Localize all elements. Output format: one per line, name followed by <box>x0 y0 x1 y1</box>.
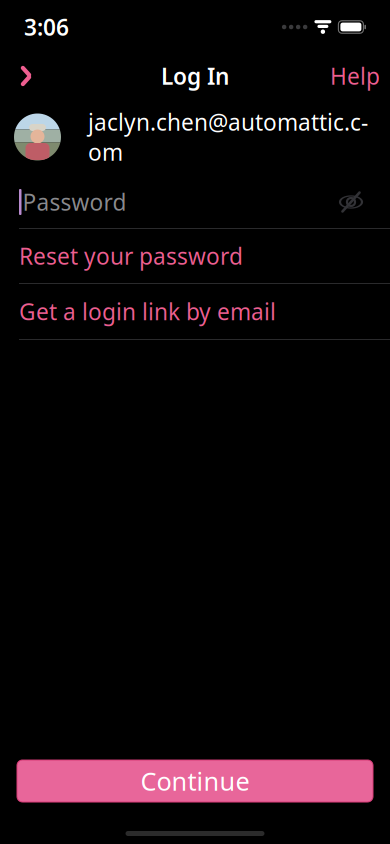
staticText: Reset your password <box>19 241 243 271</box>
button[interactable]: Show password <box>332 183 370 221</box>
staticText: Log In <box>161 61 229 91</box>
button[interactable]: Continue <box>17 760 373 802</box>
staticText: 3:06 <box>24 12 69 42</box>
staticText: Help <box>330 61 380 91</box>
button[interactable]: Back <box>4 54 48 98</box>
button[interactable]: Reset your password <box>0 228 390 283</box>
button[interactable]: Help <box>324 54 386 98</box>
staticText: jaclyn.chen@automattic.com <box>88 107 368 167</box>
staticText: Password <box>22 187 126 217</box>
button[interactable]: Get a login link by email <box>0 284 390 339</box>
staticText: Continue <box>140 764 249 798</box>
staticText: Get a login link by email <box>19 296 276 326</box>
